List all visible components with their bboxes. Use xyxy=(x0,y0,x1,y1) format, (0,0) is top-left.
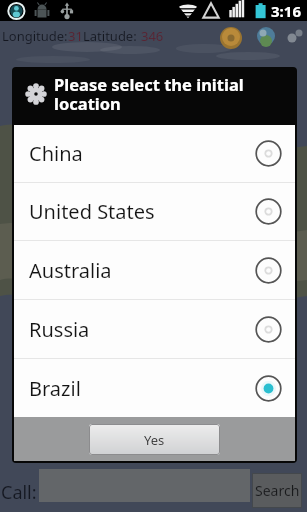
button[interactable]: Yes xyxy=(89,424,220,455)
staticText: Yes xyxy=(144,431,165,449)
staticText: Latitude: xyxy=(83,27,137,45)
staticText: Australia xyxy=(29,257,112,284)
staticText: China xyxy=(29,140,83,167)
staticText: Please select the initial location xyxy=(54,73,287,114)
staticText: Longitude: xyxy=(2,27,68,45)
button[interactable]: United States xyxy=(14,183,295,240)
staticText: Brazil xyxy=(29,375,81,402)
staticText: Search xyxy=(255,481,300,500)
staticText: Call: xyxy=(1,480,37,505)
button[interactable]: Brazil xyxy=(14,359,295,417)
staticText: 31 xyxy=(68,27,83,45)
button[interactable]: Search xyxy=(252,473,302,508)
staticText: United States xyxy=(29,198,155,225)
button[interactable]: China xyxy=(14,125,295,182)
staticText: Russia xyxy=(29,316,90,343)
button[interactable]: Russia xyxy=(14,300,295,358)
button[interactable]: Australia xyxy=(14,241,295,299)
staticText: 346 xyxy=(141,27,164,45)
staticText: 3:16 xyxy=(271,1,301,21)
